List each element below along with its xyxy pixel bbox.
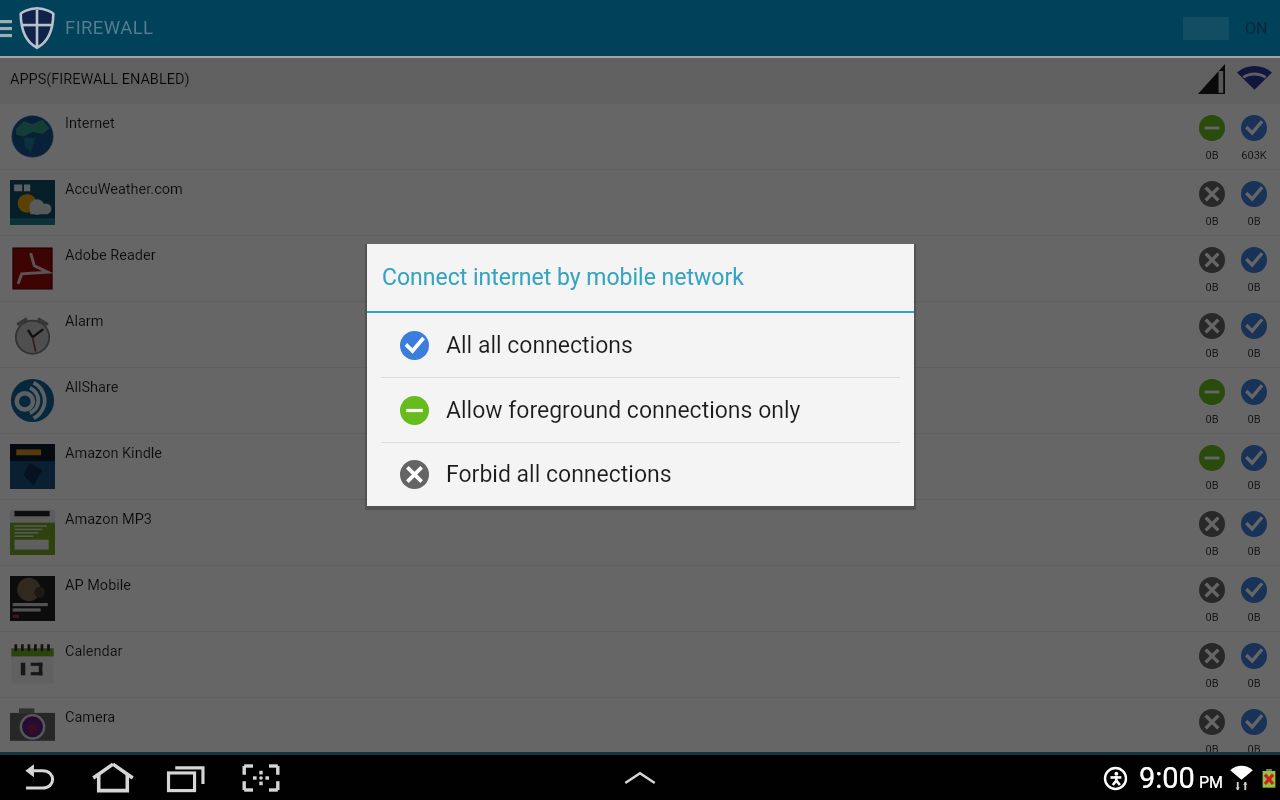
staticText: 0B xyxy=(1205,743,1219,752)
staticText: Forbid all connections xyxy=(446,461,672,488)
button[interactable]: Amazon Kindle xyxy=(0,434,1280,499)
staticText: 0B xyxy=(1247,545,1261,558)
staticText: Allow foreground connections only xyxy=(446,397,801,424)
button[interactable]: Expand xyxy=(610,755,670,800)
button[interactable]: 603K xyxy=(1239,104,1268,162)
button[interactable]: 0B xyxy=(1197,170,1226,228)
button[interactable]: 0B xyxy=(1239,302,1268,360)
staticText: All all connections xyxy=(446,332,633,359)
staticText: 0B xyxy=(1205,281,1219,294)
staticText: FIREWALL xyxy=(65,17,154,39)
staticText: Amazon MP3 xyxy=(65,511,152,528)
staticText: 603K xyxy=(1241,149,1267,162)
button[interactable]: Calendar xyxy=(0,632,1280,697)
staticText: 0B xyxy=(1247,611,1261,624)
staticText: 0B xyxy=(1205,347,1219,360)
staticText: 0B xyxy=(1205,215,1219,228)
button[interactable]: Adobe Reader xyxy=(0,236,1280,301)
button[interactable]: AllShare xyxy=(0,368,1280,433)
staticText: 0B xyxy=(1247,215,1261,228)
button[interactable]: Dismiss dialog xyxy=(0,58,1280,752)
button[interactable]: 0B xyxy=(1197,236,1226,294)
button[interactable]: All all connections xyxy=(367,313,914,377)
button[interactable]: Alarm xyxy=(0,302,1280,367)
button[interactable]: Menu xyxy=(0,0,14,56)
staticText: ON xyxy=(1245,19,1268,38)
staticText: 0B xyxy=(1247,347,1261,360)
button[interactable]: 0B xyxy=(1197,434,1226,492)
staticText: 9:00 xyxy=(1139,761,1195,795)
staticText: PM xyxy=(1199,773,1224,792)
staticText: AccuWeather.com xyxy=(65,181,183,198)
staticText: 0B xyxy=(1247,413,1261,426)
button[interactable]: Firewall on/off switch xyxy=(1183,17,1280,40)
staticText: 0B xyxy=(1247,743,1261,752)
button[interactable]: 0B xyxy=(1239,434,1268,492)
button[interactable]: Forbid all connections xyxy=(367,443,914,506)
button[interactable]: Back xyxy=(2,755,76,800)
button[interactable]: 0B xyxy=(1197,698,1226,752)
button[interactable]: Camera xyxy=(0,698,1280,752)
staticText: 0B xyxy=(1205,413,1219,426)
staticText: Alarm xyxy=(65,313,104,330)
staticText: 0B xyxy=(1247,479,1261,492)
button[interactable]: 0B xyxy=(1197,302,1226,360)
button[interactable]: Allow foreground connections only xyxy=(367,378,914,442)
button[interactable]: Screenshot xyxy=(224,755,298,800)
button[interactable]: 0B xyxy=(1239,500,1268,558)
staticText: 0B xyxy=(1247,677,1261,690)
button[interactable]: 0B xyxy=(1197,368,1226,426)
button[interactable]: 0B xyxy=(1197,566,1226,624)
staticText: 0B xyxy=(1205,611,1219,624)
button[interactable]: Home xyxy=(76,755,150,800)
button[interactable]: Amazon MP3 xyxy=(0,500,1280,565)
staticText: Camera xyxy=(65,709,116,726)
button[interactable]: 0B xyxy=(1197,104,1226,162)
staticText: Adobe Reader xyxy=(65,247,156,264)
button[interactable]: 0B xyxy=(1239,368,1268,426)
staticText: Internet xyxy=(65,115,115,132)
staticText: Calendar xyxy=(65,643,123,660)
staticText: 0B xyxy=(1205,479,1219,492)
button[interactable]: 0B xyxy=(1197,500,1226,558)
staticText: AP Mobile xyxy=(65,577,132,594)
button[interactable]: 0B xyxy=(1239,566,1268,624)
button[interactable]: 0B xyxy=(1239,170,1268,228)
button[interactable]: AccuWeather.com xyxy=(0,170,1280,235)
button[interactable]: 0B xyxy=(1239,698,1268,752)
staticText: 0B xyxy=(1205,545,1219,558)
button[interactable]: Recents xyxy=(150,755,224,800)
button[interactable]: 0B xyxy=(1239,632,1268,690)
button[interactable]: Internet xyxy=(0,104,1280,169)
staticText: 0B xyxy=(1247,281,1261,294)
staticText: 0B xyxy=(1205,149,1219,162)
staticText: AllShare xyxy=(65,379,119,396)
staticText: Amazon Kindle xyxy=(65,445,163,462)
button[interactable]: 0B xyxy=(1197,632,1226,690)
button[interactable]: AP Mobile xyxy=(0,566,1280,631)
staticText: 0B xyxy=(1205,677,1219,690)
staticText: Connect internet by mobile network xyxy=(382,264,744,291)
button[interactable]: 0B xyxy=(1239,236,1268,294)
staticText: APPS(FIREWALL ENABLED) xyxy=(10,71,190,88)
